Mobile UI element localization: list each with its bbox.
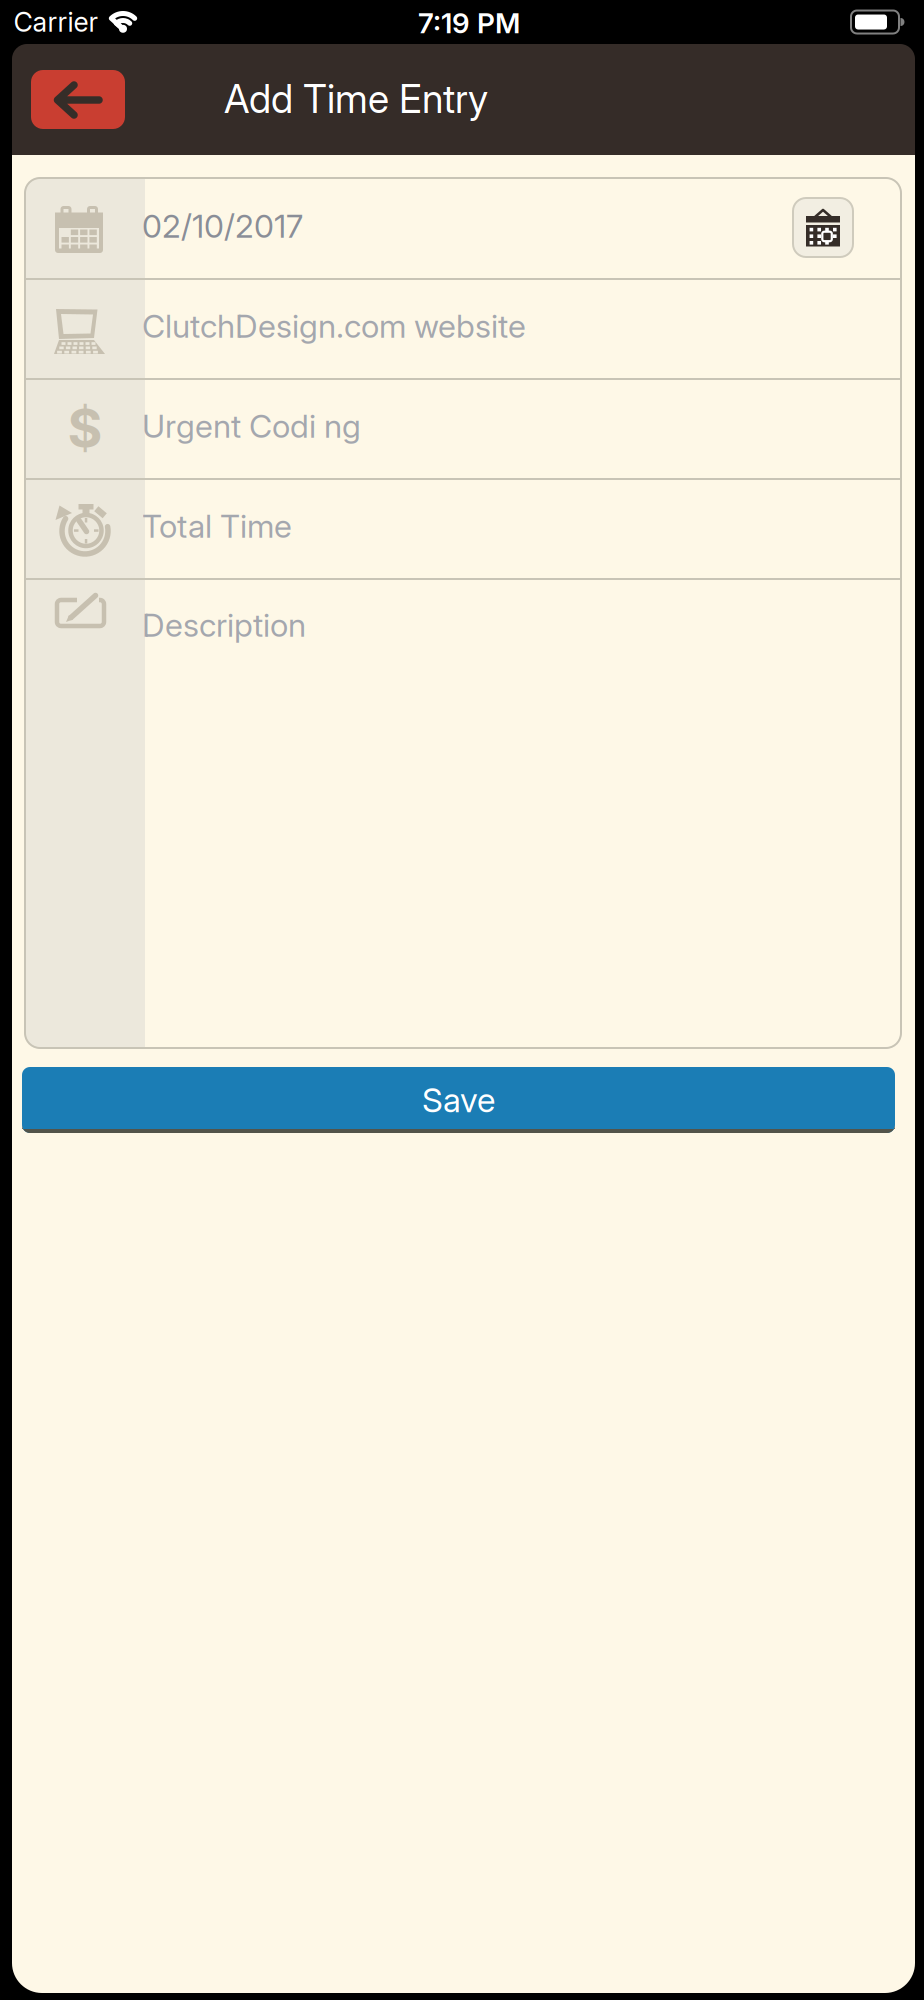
- staticText: Total Time: [142, 507, 292, 545]
- staticText: 7:19 PM: [418, 6, 520, 39]
- staticText: $: [67, 396, 102, 459]
- staticText: ClutchDesign.com website: [142, 307, 526, 345]
- staticText: 02/10/2017: [142, 207, 303, 245]
- button[interactable]: 02/10/2017: [25, 178, 901, 278]
- button[interactable]: Description: [25, 578, 901, 1048]
- staticText: Urgent Codi ng: [142, 407, 361, 445]
- staticText: Add Time Entry: [224, 76, 488, 122]
- button[interactable]: Back: [31, 70, 125, 129]
- button[interactable]: Choose date: [793, 198, 853, 257]
- staticText: Carrier: [13, 6, 98, 38]
- staticText: Description: [142, 606, 306, 644]
- staticText: Save: [422, 1080, 495, 1120]
- button[interactable]: Total Time: [25, 478, 901, 578]
- button[interactable]: $: [25, 378, 901, 478]
- button[interactable]: ClutchDesign.com website: [25, 278, 901, 378]
- button[interactable]: Save: [22, 1067, 895, 1133]
